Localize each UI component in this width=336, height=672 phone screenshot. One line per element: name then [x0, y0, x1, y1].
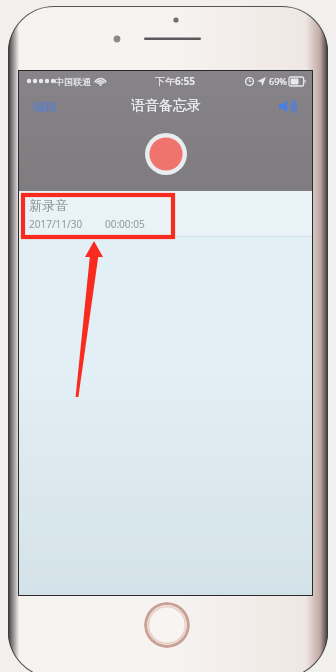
staticText: 69%: [269, 75, 287, 87]
button[interactable]: 编辑: [29, 96, 61, 117]
staticText: 编辑: [33, 99, 57, 114]
button[interactable]: Speaker: [276, 96, 302, 117]
button[interactable]: 新录音: [19, 191, 312, 236]
staticText: 语音备忘录: [131, 97, 201, 115]
staticText: 新录音: [29, 197, 68, 213]
staticText: 00:00:05: [105, 217, 145, 231]
button[interactable]: Home: [144, 602, 190, 648]
staticText: 下午6:55: [155, 74, 195, 88]
staticText: 2017/11/30: [29, 217, 83, 231]
button[interactable]: Record: [144, 132, 188, 176]
staticText: 中国联通: [55, 76, 91, 87]
